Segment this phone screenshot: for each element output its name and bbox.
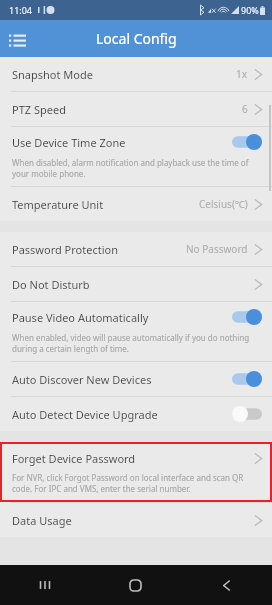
- staticText: PTZ Speed: [12, 102, 66, 117]
- staticText: 1x: [236, 67, 248, 81]
- staticText: Use Device Time Zone: [12, 135, 126, 150]
- staticText: For NVR, click Forgot Password on local …: [12, 472, 260, 494]
- button[interactable]: Data Usage: [0, 503, 272, 537]
- staticText: 90%: [241, 4, 259, 16]
- staticText: Celsius(℃): [199, 197, 248, 211]
- staticText: Data Usage: [12, 513, 72, 528]
- button[interactable]: Snapshot Mode: [0, 57, 272, 91]
- button[interactable]: Pause Video Automatically: [0, 302, 272, 361]
- staticText: Local Config: [96, 29, 177, 48]
- staticText: No Password: [186, 242, 248, 256]
- staticText: Pause Video Automatically: [12, 310, 149, 325]
- button[interactable]: Back: [181, 565, 272, 605]
- button[interactable]: PTZ Speed: [0, 92, 272, 126]
- button[interactable]: Password Protection: [0, 232, 272, 266]
- button[interactable]: Use Device Time Zone: [0, 127, 272, 186]
- staticText: Auto Discover New Devices: [12, 372, 152, 387]
- staticText: Do Not Disturb: [12, 277, 90, 292]
- button[interactable]: Recent apps: [0, 565, 90, 605]
- button[interactable]: Forget Device Password: [0, 442, 272, 502]
- button[interactable]: Auto Discover New Devices: [0, 362, 272, 396]
- staticText: When disabled, alarm notification and pl…: [12, 157, 260, 179]
- button[interactable]: Do Not Disturb: [0, 267, 272, 301]
- staticText: When enabled, video will pause automatic…: [12, 332, 260, 354]
- staticText: Snapshot Mode: [12, 67, 93, 82]
- staticText: Temperature Unit: [12, 197, 104, 212]
- staticText: 6: [242, 102, 248, 116]
- staticText: Password Protection: [12, 242, 118, 257]
- button[interactable]: Home: [90, 565, 181, 605]
- staticText: Auto Detect Device Upgrade: [12, 407, 158, 422]
- staticText: Forget Device Password: [12, 451, 136, 466]
- button[interactable]: Menu: [0, 22, 34, 56]
- staticText: 11:04: [9, 4, 33, 16]
- button[interactable]: Temperature Unit: [0, 187, 272, 221]
- button[interactable]: Auto Detect Device Upgrade: [0, 397, 272, 431]
